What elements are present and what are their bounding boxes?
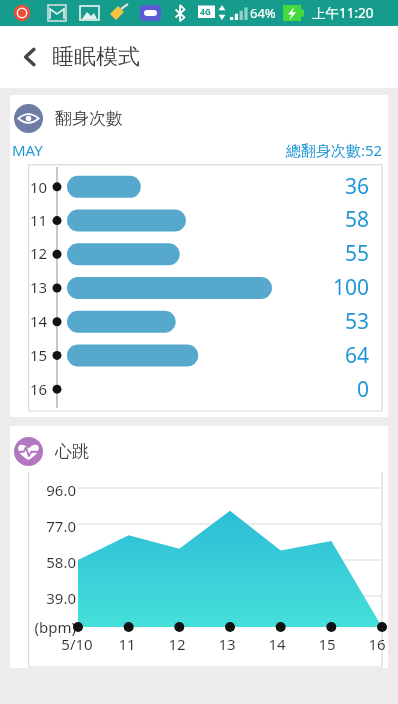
staticText: 58: [344, 205, 369, 234]
staticText: 16: [30, 379, 48, 399]
staticText: MAY: [12, 140, 43, 160]
staticText: 77.0: [10, 516, 76, 536]
staticText: 39.0: [10, 588, 76, 608]
staticText: 55: [344, 239, 369, 268]
staticText: 11: [104, 634, 150, 654]
staticText: 總翻身次數:52: [286, 140, 383, 160]
staticText: 58.0: [10, 552, 76, 572]
staticText: 64%: [250, 4, 276, 22]
staticText: 0: [356, 375, 369, 404]
button[interactable]: Back: [8, 35, 52, 79]
staticText: 15: [304, 634, 350, 654]
staticText: 64: [344, 341, 369, 370]
staticText: 53: [344, 307, 369, 336]
staticText: 翻身次數: [55, 108, 123, 129]
staticText: 16: [354, 634, 398, 654]
staticText: 14: [254, 634, 300, 654]
staticText: 12: [154, 634, 200, 654]
staticText: 96.0: [10, 480, 76, 500]
staticText: 心跳: [55, 441, 89, 462]
staticText: 4G: [200, 6, 212, 18]
staticText: 14: [30, 311, 48, 331]
staticText: 上午11:20: [312, 4, 374, 22]
staticText: (bpm): [10, 617, 76, 637]
button[interactable]: 翻身次數: [10, 95, 388, 417]
staticText: 100: [332, 273, 369, 302]
staticText: 10: [30, 177, 48, 197]
staticText: 11: [30, 210, 48, 230]
staticText: 睡眠模式: [52, 43, 140, 71]
staticText: 13: [204, 634, 250, 654]
button[interactable]: 心跳: [10, 426, 388, 668]
staticText: 13: [30, 277, 48, 297]
staticText: 12: [30, 243, 48, 263]
staticText: 5/10: [54, 634, 100, 654]
staticText: 15: [30, 345, 48, 365]
staticText: 36: [344, 172, 369, 201]
